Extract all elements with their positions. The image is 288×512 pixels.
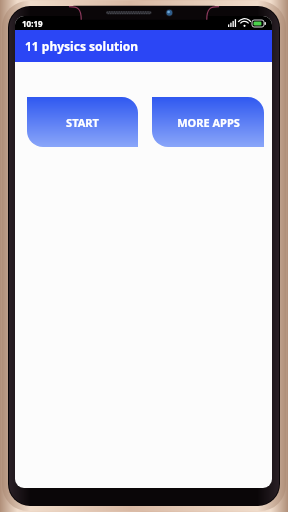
button[interactable]: START bbox=[27, 97, 138, 147]
staticText: START bbox=[66, 115, 99, 130]
staticText: 10:19 bbox=[22, 18, 43, 29]
button[interactable]: MORE APPS bbox=[152, 97, 264, 147]
staticText: MORE APPS bbox=[177, 115, 240, 130]
staticText: 11 physics solution bbox=[25, 38, 139, 54]
